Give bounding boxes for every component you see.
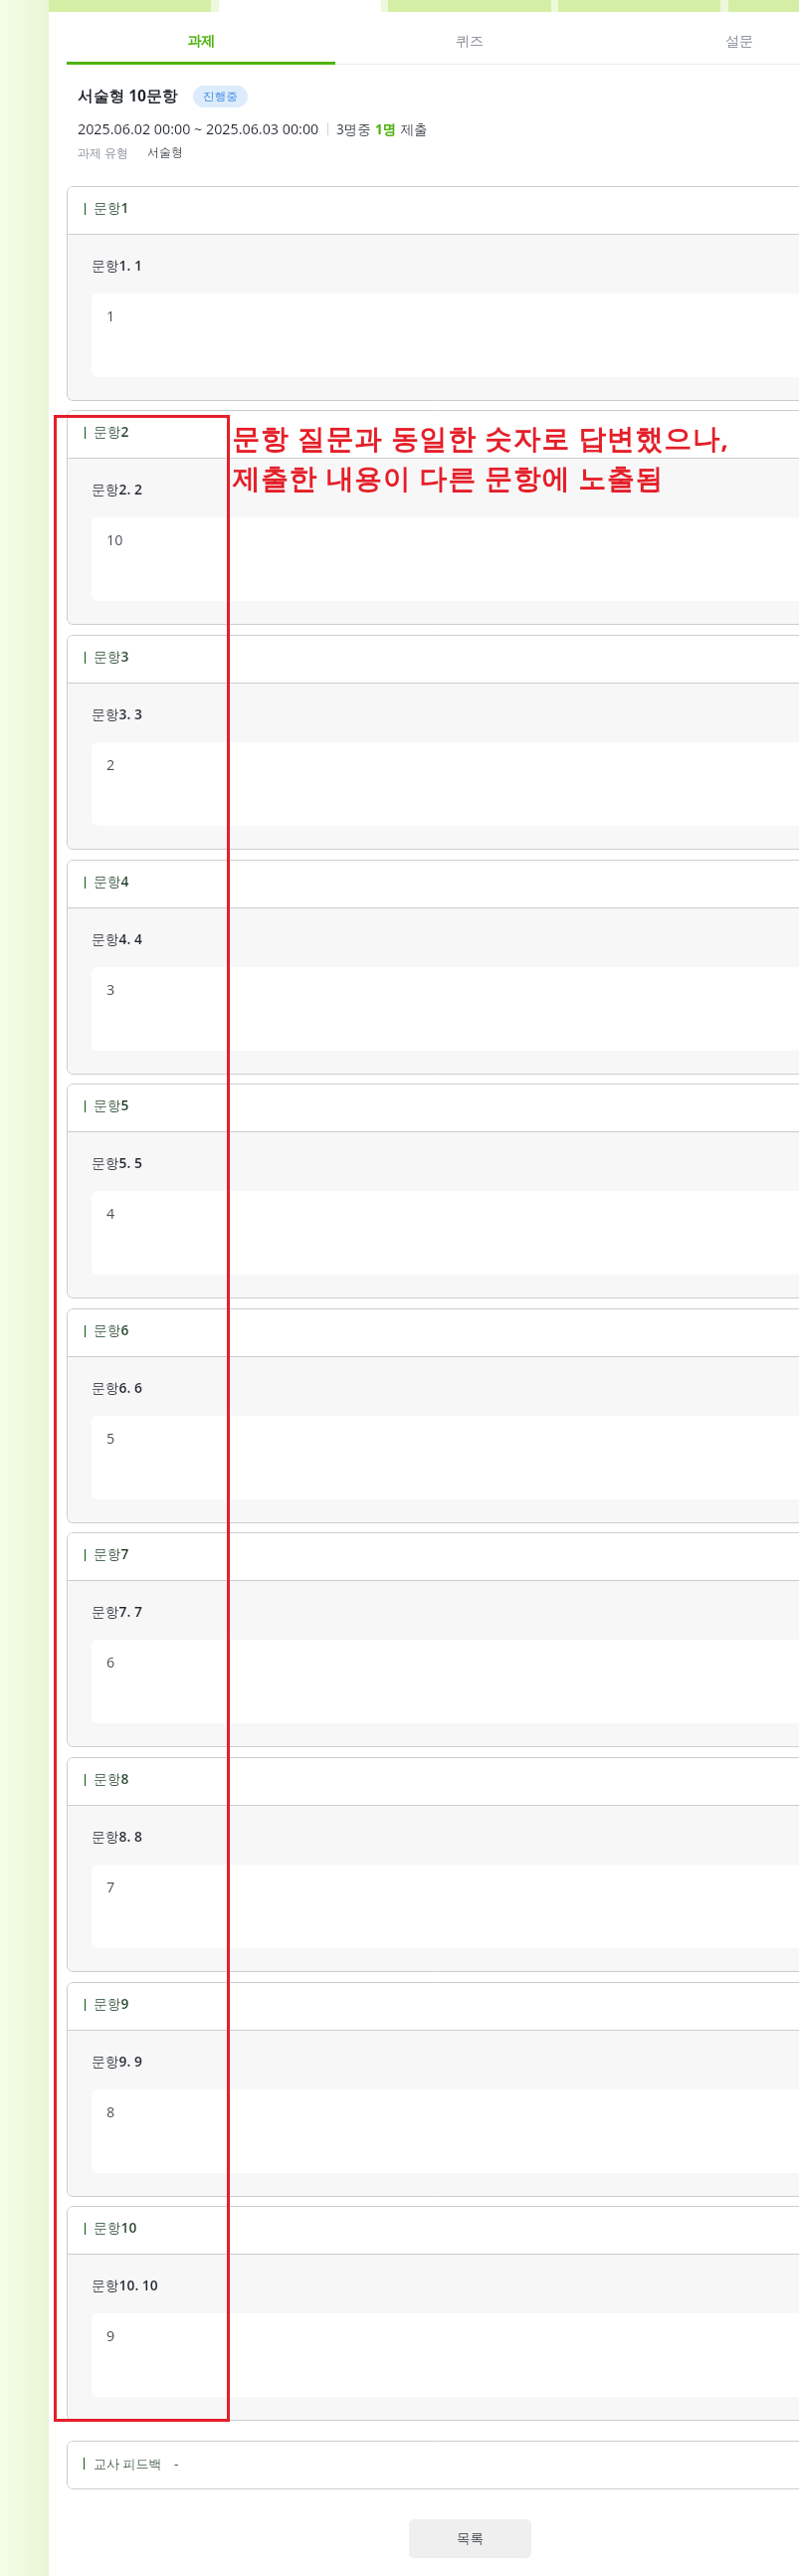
staticText: 8 xyxy=(106,2102,115,2121)
staticText: 서술형 xyxy=(147,144,183,159)
staticText: 문항5. 5 xyxy=(92,1153,142,1172)
staticText: 서술형 10문항 xyxy=(78,85,178,105)
button[interactable]: 과제 xyxy=(67,20,335,65)
staticText: 문항10 xyxy=(94,2218,137,2237)
staticText: 3명중 xyxy=(336,120,375,138)
button[interactable]: 문항10 xyxy=(67,2206,799,2421)
button[interactable]: 문항5 xyxy=(67,1084,799,1298)
staticText: 2025.06.02 00:00 ~ 2025.06.03 00:00 xyxy=(78,119,319,138)
staticText: 문항1 xyxy=(94,198,129,217)
staticText: 문항2 xyxy=(94,422,129,441)
staticText: 문항8 xyxy=(94,1769,129,1788)
staticText: 4 xyxy=(106,1204,115,1223)
button[interactable]: 문항6 xyxy=(67,1308,799,1523)
staticText: 진행중 xyxy=(203,90,238,104)
staticText: 문항9. 9 xyxy=(92,2052,142,2071)
staticText: 문항3. 3 xyxy=(92,704,142,723)
staticText: 7 xyxy=(106,1878,115,1896)
staticText: 6 xyxy=(106,1653,115,1672)
staticText: 1명 xyxy=(375,120,397,138)
staticText: 1 xyxy=(106,306,115,325)
staticText: 9 xyxy=(106,2326,115,2345)
staticText: 교사 피드백 xyxy=(94,2455,162,2473)
staticText: 문항6 xyxy=(94,1320,129,1339)
staticText: 설문 xyxy=(725,33,753,51)
staticText: 문항4. 4 xyxy=(92,929,142,948)
staticText: - xyxy=(174,2455,179,2473)
button[interactable]: 문항8 xyxy=(67,1757,799,1972)
staticText: 2 xyxy=(106,755,115,774)
staticText: 문항 질문과 동일한 숫자로 답변했으나, 제출한 내용이 다른 문항에 노출됨 xyxy=(232,419,730,496)
button[interactable]: 문항1 xyxy=(67,186,799,401)
staticText: 과제 유형 xyxy=(78,144,129,160)
staticText: 문항10. 10 xyxy=(92,2276,158,2294)
button[interactable]: 퀴즈 xyxy=(335,20,604,65)
staticText: 문항1. 1 xyxy=(92,256,142,275)
button[interactable]: 문항3 xyxy=(67,635,799,850)
button[interactable]: 문항7 xyxy=(67,1532,799,1747)
staticText: 3 xyxy=(106,980,115,999)
button[interactable]: 교사 피드백 xyxy=(67,2441,799,2489)
staticText: 문항9 xyxy=(94,1994,129,2013)
button[interactable]: 진행중 xyxy=(203,86,238,107)
staticText: 문항7. 7 xyxy=(92,1602,142,1621)
staticText: 문항3 xyxy=(94,647,129,666)
button[interactable]: 문항9 xyxy=(67,1982,799,2197)
staticText: 퀴즈 xyxy=(456,33,484,51)
staticText: 과제 xyxy=(187,33,215,51)
button[interactable]: 목록 xyxy=(409,2519,531,2558)
staticText: 문항8. 8 xyxy=(92,1827,142,1846)
staticText: 10 xyxy=(106,530,123,549)
button[interactable]: 설문 xyxy=(605,20,799,65)
staticText: 5 xyxy=(106,1429,115,1448)
button[interactable]: 문항4 xyxy=(67,860,799,1075)
staticText: 문항6. 6 xyxy=(92,1378,142,1397)
staticText: 목록 xyxy=(457,2530,485,2547)
staticText: 문항4 xyxy=(94,872,129,891)
staticText: 문항2. 2 xyxy=(92,480,142,498)
button[interactable]: 문항2 xyxy=(67,410,799,625)
staticText: 문항5 xyxy=(94,1095,129,1114)
staticText: 문항7 xyxy=(94,1544,129,1563)
staticText: 제출 xyxy=(397,120,428,138)
